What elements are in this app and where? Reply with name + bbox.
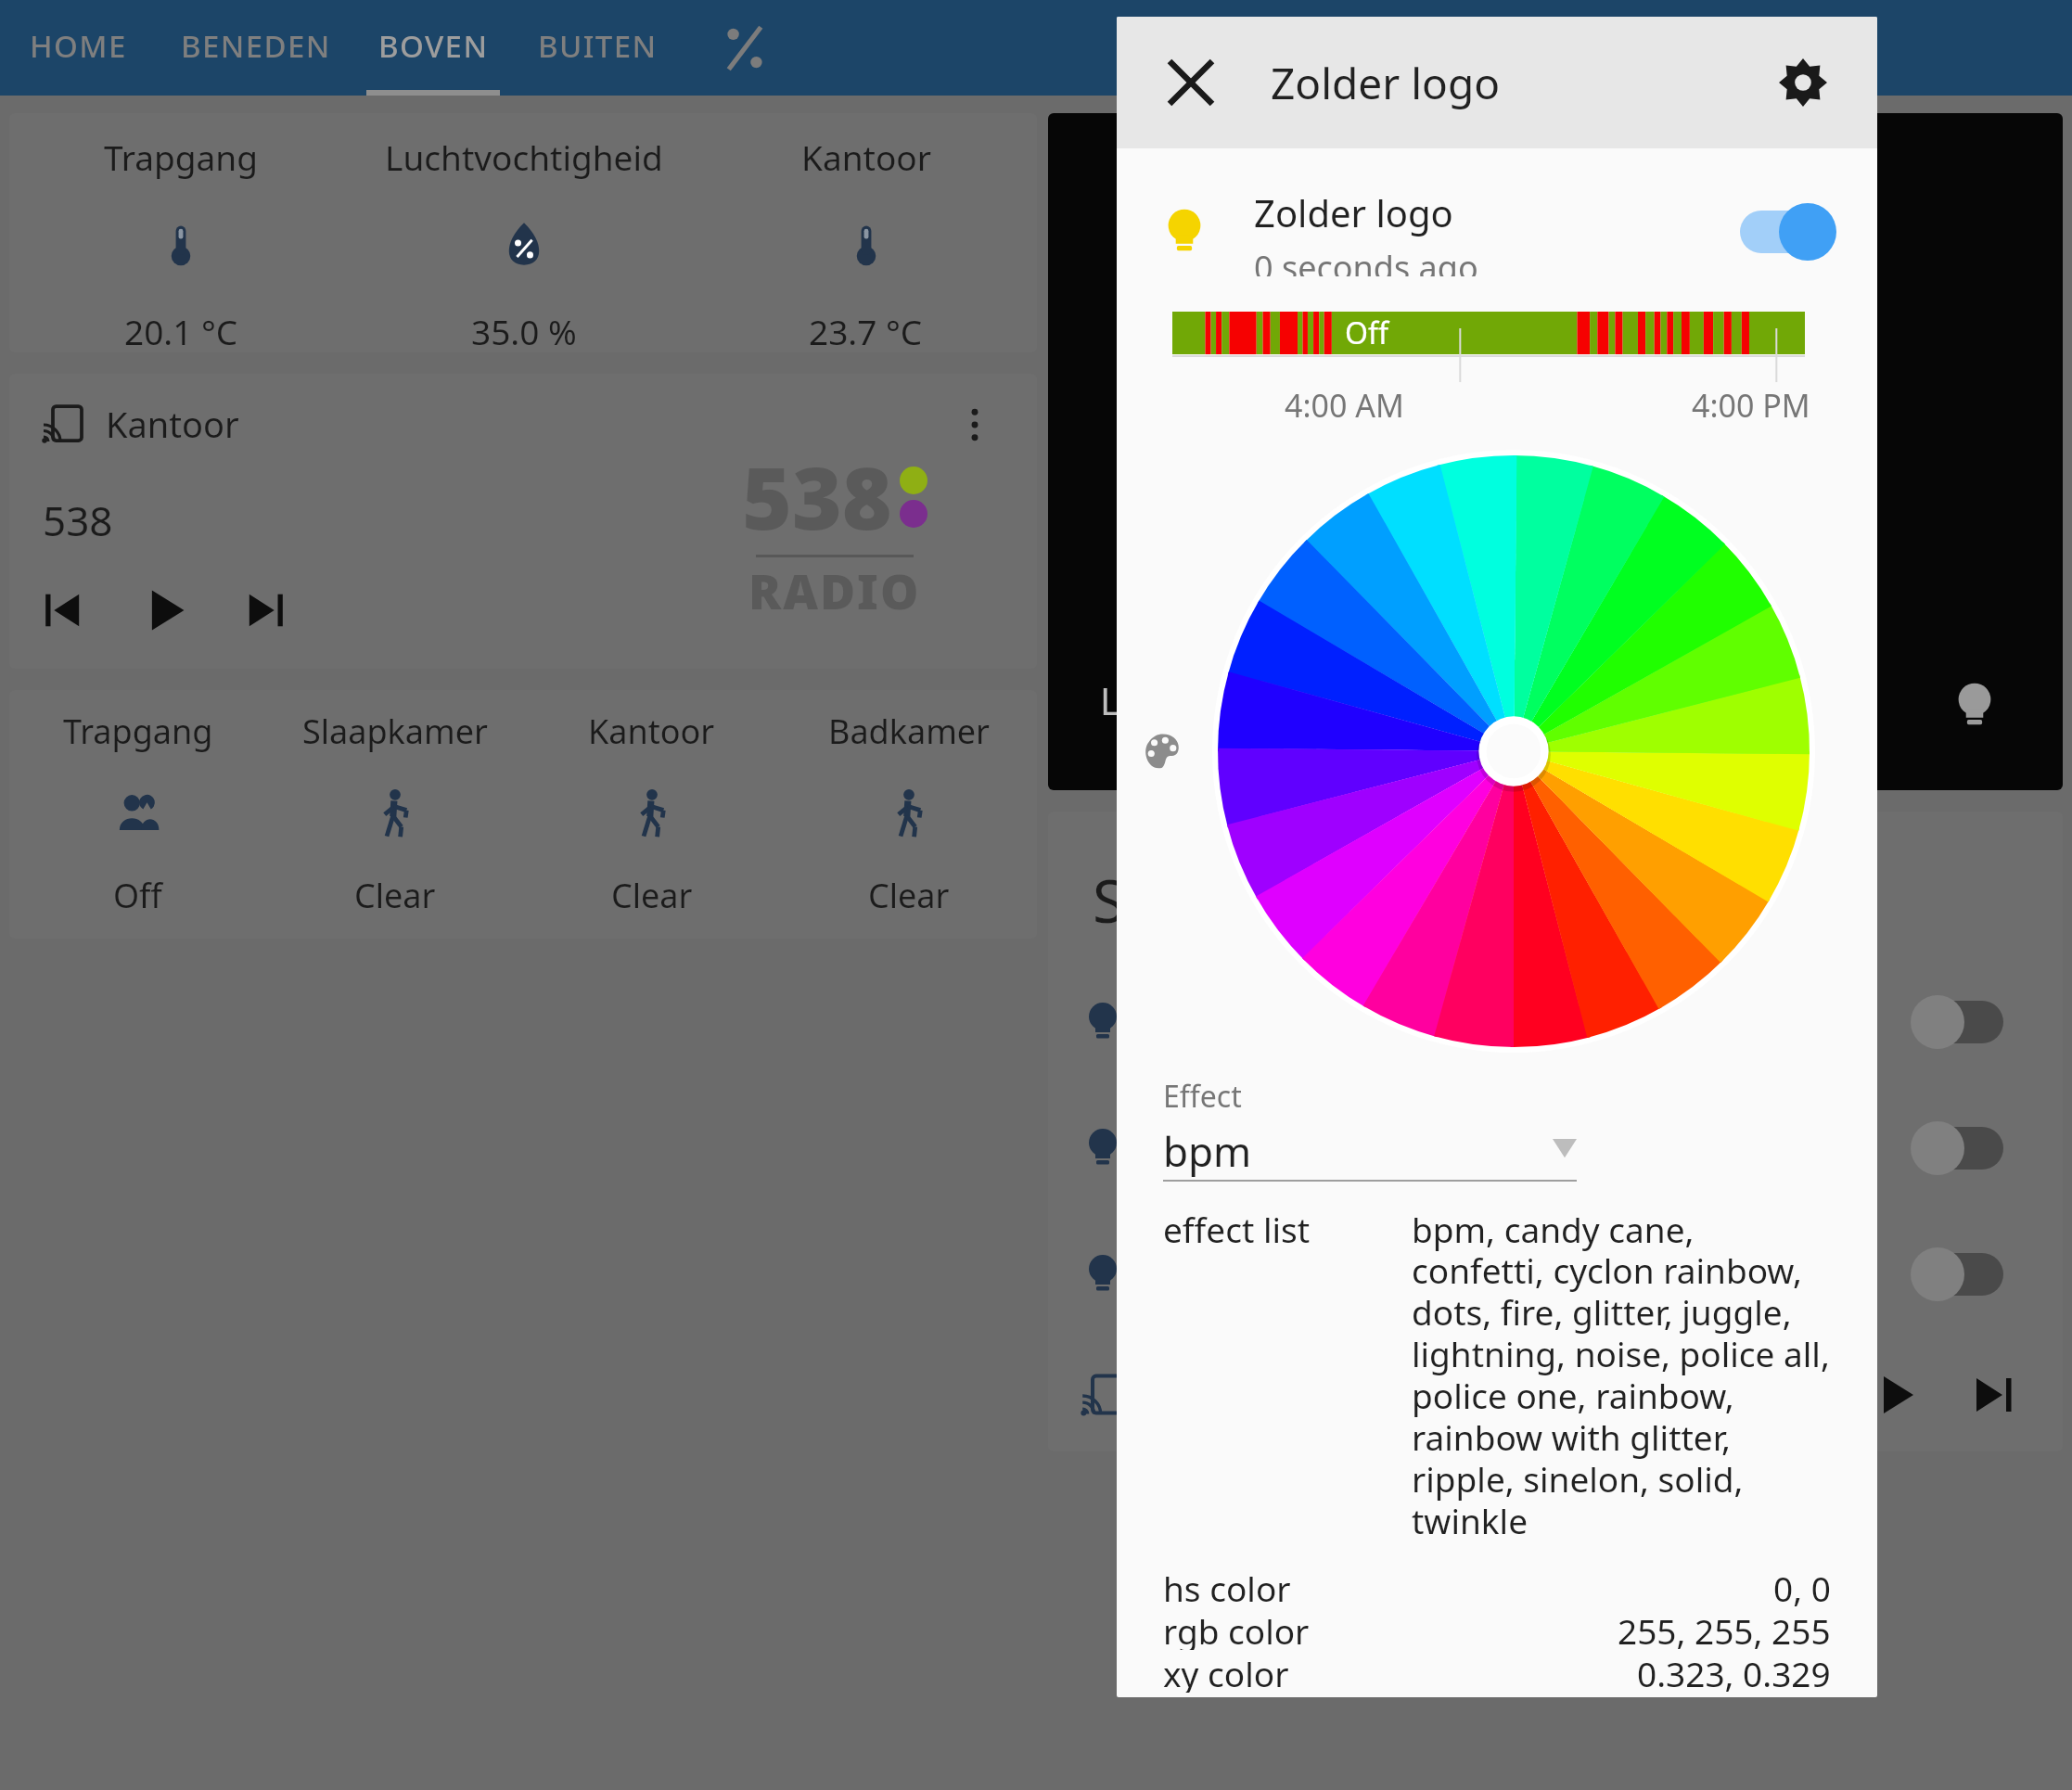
staticText: HOME — [30, 25, 127, 67]
staticText: 4:00 AM — [1285, 384, 1404, 427]
button[interactable]: Toggle — [1080, 993, 2014, 1051]
staticText: 0, 0 — [1773, 1565, 1831, 1607]
button[interactable]: BENEDEN — [156, 0, 355, 96]
button[interactable]: Settings — [1770, 49, 1836, 116]
button[interactable]: Shortcuts — [684, 0, 806, 96]
staticText: BUITEN — [538, 25, 658, 67]
button[interactable]: Toggle — [1911, 993, 2014, 1051]
button[interactable]: Close — [1158, 49, 1224, 116]
button[interactable]: Loft — [1048, 113, 2063, 790]
button[interactable]: Luchtvochtigheid — [352, 134, 695, 352]
staticText: Slaapkamer — [302, 709, 488, 754]
button[interactable]: Badkamer — [780, 709, 1037, 939]
staticText: 538 — [43, 492, 113, 548]
staticText: 23.7 °C — [809, 308, 923, 352]
staticText: hs color — [1163, 1565, 1291, 1607]
button[interactable]: Colour wheel — [1212, 450, 1815, 1053]
button[interactable]: Toggle — [1911, 1119, 2014, 1177]
staticText: 255, 255, 255 — [1618, 1607, 1831, 1650]
button[interactable]: Toggle — [1911, 1246, 2014, 1303]
button[interactable]: Play — [1874, 1372, 1920, 1418]
staticText: BOVEN — [378, 25, 489, 67]
staticText: bpm, candy cane, confetti, cyclon rainbo… — [1412, 1206, 1831, 1544]
staticText: rgb color — [1163, 1607, 1310, 1650]
staticText: Loft — [1100, 675, 1169, 725]
staticText: S — [1093, 860, 1126, 940]
button[interactable]: Previous — [39, 588, 83, 633]
button[interactable]: Play — [141, 585, 191, 635]
staticText: Off — [1345, 313, 1389, 353]
staticText: Clear — [611, 873, 693, 918]
staticText: Zolder logo — [1254, 187, 1453, 237]
staticText: 0 seconds ago — [1254, 245, 1478, 276]
button[interactable]: Toggle — [1080, 1246, 2014, 1303]
staticText: Badkamer — [828, 709, 990, 754]
staticText: Trapgang — [63, 709, 213, 754]
button[interactable]: Next — [1972, 1372, 2018, 1418]
button[interactable]: bpm — [1163, 1122, 1577, 1180]
button[interactable]: Kantoor — [695, 134, 1037, 352]
staticText: Kantoor — [588, 709, 715, 754]
button[interactable]: Toggle — [1080, 1119, 2014, 1177]
button[interactable]: Kantoor — [523, 709, 780, 939]
staticText: 538 — [742, 439, 892, 555]
staticText: 0.323, 0.329 — [1637, 1650, 1831, 1693]
staticText: Off — [113, 873, 162, 918]
staticText: 20.1 °C — [124, 308, 238, 352]
staticText: 35.0 % — [471, 308, 577, 352]
staticText: effect list — [1163, 1206, 1412, 1252]
staticText: Trapgang — [104, 134, 258, 180]
button[interactable]: BOVEN — [355, 0, 511, 96]
button[interactable]: Zolder logo — [1158, 187, 1836, 276]
staticText: Luchtvochtigheid — [385, 134, 663, 180]
button[interactable]: HOME — [0, 0, 156, 96]
staticText: Zolder logo — [1271, 54, 1501, 112]
staticText: Kantoor — [106, 400, 239, 448]
button[interactable]: BUITEN — [511, 0, 684, 96]
staticText: Clear — [868, 873, 950, 918]
staticText: Kantoor — [801, 134, 931, 180]
button[interactable]: Next — [245, 588, 289, 633]
button[interactable]: Trapgang — [9, 709, 266, 939]
staticText: Effect — [1163, 1076, 1242, 1117]
staticText: RADIO — [748, 557, 921, 623]
staticText: 4:00 PM — [1692, 384, 1810, 427]
button[interactable]: Trapgang — [9, 134, 352, 352]
staticText: bpm — [1163, 1123, 1252, 1179]
button[interactable]: Slaapkamer — [266, 709, 523, 939]
button[interactable]: More options — [952, 402, 998, 448]
staticText: Clear — [354, 873, 436, 918]
staticText: BENEDEN — [181, 25, 331, 67]
button[interactable]: Power toggle — [1725, 201, 1836, 262]
staticText: xy color — [1163, 1650, 1289, 1693]
